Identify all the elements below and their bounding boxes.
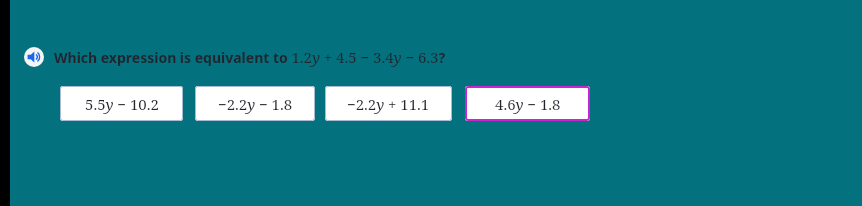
staticText: −2.2y + 11.1 xyxy=(347,94,430,114)
staticText: −2.2y − 1.8 xyxy=(218,94,293,114)
button[interactable]: Listen to the question xyxy=(24,47,44,67)
button[interactable]: 5.5y − 10.2 xyxy=(60,86,183,121)
staticText: 4.6y − 1.8 xyxy=(495,94,561,114)
staticText: Which expression is equivalent to 1.2y +… xyxy=(54,47,446,67)
button[interactable]: −2.2y + 11.1 xyxy=(325,86,452,121)
button[interactable]: −2.2y − 1.8 xyxy=(195,86,315,121)
button[interactable]: 4.6y − 1.8 xyxy=(465,86,590,121)
staticText: 5.5y − 10.2 xyxy=(85,94,159,114)
